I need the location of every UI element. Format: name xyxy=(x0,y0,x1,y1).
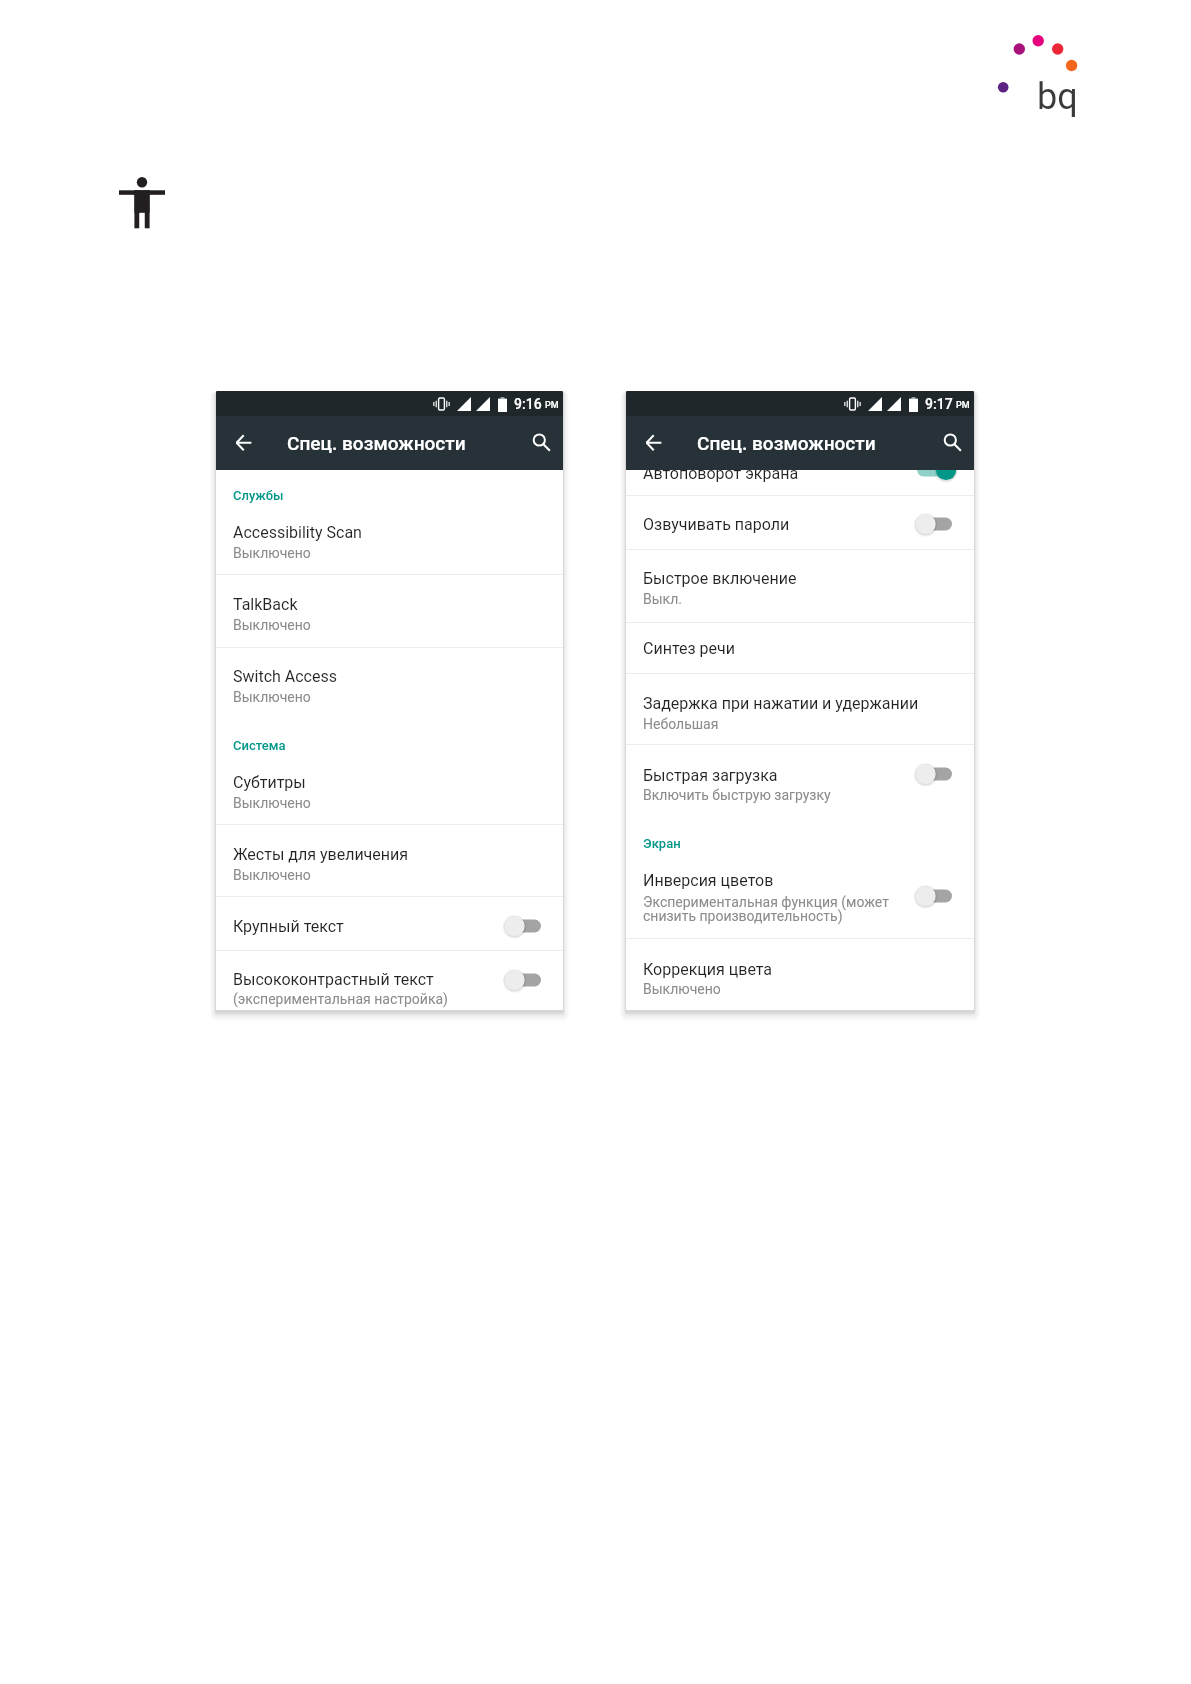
staticText: Небольшая xyxy=(643,716,719,732)
button[interactable]: Accessibility Scan xyxy=(216,470,563,574)
button[interactable]: Switch Access xyxy=(216,648,563,720)
button[interactable]: Автоповорот экрана xyxy=(626,451,974,495)
button[interactable]: Задержка при нажатии и удержании xyxy=(626,674,974,744)
button[interactable]: Озвучивать пароли xyxy=(626,496,974,549)
staticText: TalkBack xyxy=(233,595,298,614)
button[interactable]: Быстрая загрузка xyxy=(626,745,974,819)
button[interactable]: Back xyxy=(626,416,666,470)
staticText: Выключено xyxy=(233,689,311,705)
button[interactable]: TalkBack xyxy=(216,575,563,647)
staticText: Коррекция цвета xyxy=(643,960,773,979)
button[interactable]: Синтез речи xyxy=(626,623,974,673)
staticText: Службы xyxy=(233,488,284,503)
staticText: Озвучивать пароли xyxy=(643,515,790,534)
staticText: 9:16 xyxy=(514,396,542,412)
other: bq logo xyxy=(990,25,1090,120)
button[interactable]: Крупный текст xyxy=(216,897,563,950)
staticText: bq xyxy=(1037,76,1078,118)
staticText: Выключено xyxy=(643,981,721,997)
button[interactable]: Инверсия цветов xyxy=(626,819,974,938)
staticText: Экран xyxy=(643,836,681,851)
staticText: Экспериментальная функция (может xyxy=(643,894,889,910)
other: Accessibility xyxy=(119,176,165,229)
staticText: Система xyxy=(233,738,286,753)
staticText: PM xyxy=(545,400,559,411)
staticText: Спец. возможности xyxy=(697,432,876,454)
staticText: Крупный текст xyxy=(233,917,344,936)
button[interactable]: Search xyxy=(519,416,563,470)
staticText: Выкл. xyxy=(643,591,682,607)
staticText: Высококонтрастный текст xyxy=(233,970,434,989)
staticText: Спец. возможности xyxy=(287,432,466,454)
staticText: Быстрое включение xyxy=(643,569,797,588)
button[interactable]: Быстрое включение xyxy=(626,550,974,622)
staticText: (экспериментальная настройка) xyxy=(233,991,448,1007)
staticText: 9:17 xyxy=(925,396,953,412)
button[interactable]: Back xyxy=(216,416,256,470)
staticText: Задержка при нажатии и удержании xyxy=(643,694,919,713)
staticText: Выключено xyxy=(233,867,311,883)
button[interactable]: Жесты для увеличения xyxy=(216,825,563,896)
staticText: Выключено xyxy=(233,617,311,633)
button[interactable]: Коррекция цвета xyxy=(626,939,974,1010)
staticText: Accessibility Scan xyxy=(233,523,362,542)
button[interactable]: Search xyxy=(930,416,974,470)
staticText: Выключено xyxy=(233,795,311,811)
button[interactable]: Высококонтрастный текст xyxy=(216,951,563,1010)
staticText: снизить производительность) xyxy=(643,908,843,924)
staticText: Включить быструю загрузку xyxy=(643,787,831,803)
staticText: Выключено xyxy=(233,545,311,561)
staticText: Инверсия цветов xyxy=(643,871,774,890)
staticText: Жесты для увеличения xyxy=(233,845,409,864)
staticText: Switch Access xyxy=(233,667,337,686)
staticText: Субтитры xyxy=(233,773,306,792)
staticText: Синтез речи xyxy=(643,639,735,658)
staticText: Автоповорот экрана xyxy=(643,464,799,483)
staticText: Быстрая загрузка xyxy=(643,766,778,785)
button[interactable]: Субтитры xyxy=(216,720,563,824)
staticText: PM xyxy=(956,400,970,411)
